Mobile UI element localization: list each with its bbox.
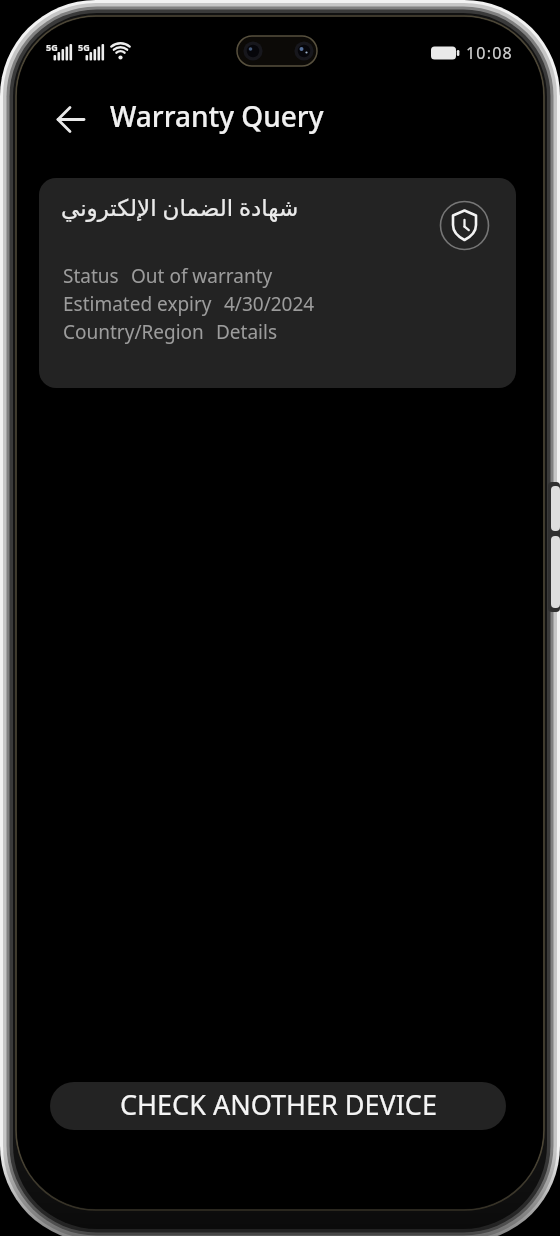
staticText: Warranty Query — [110, 97, 324, 135]
staticText: شهادة الضمان الإلكتروني — [61, 191, 299, 222]
staticText: CHECK ANOTHER DEVICE — [120, 1086, 437, 1123]
button[interactable] — [44, 98, 92, 142]
button[interactable]: CHECK ANOTHER DEVICE — [50, 1082, 506, 1130]
staticText: 5G — [46, 41, 58, 53]
button[interactable]: شهادة الضمان الإلكتروني — [39, 178, 516, 388]
staticText: Details — [216, 319, 278, 345]
staticText: Status — [63, 263, 119, 289]
staticText: Country/Region — [63, 319, 204, 345]
staticText: 4/30/2024 — [224, 291, 315, 317]
staticText: Out of warranty — [131, 263, 273, 289]
staticText: 10:08 — [466, 42, 513, 64]
staticText: Estimated expiry — [63, 291, 212, 317]
staticText: 5G — [78, 41, 90, 53]
